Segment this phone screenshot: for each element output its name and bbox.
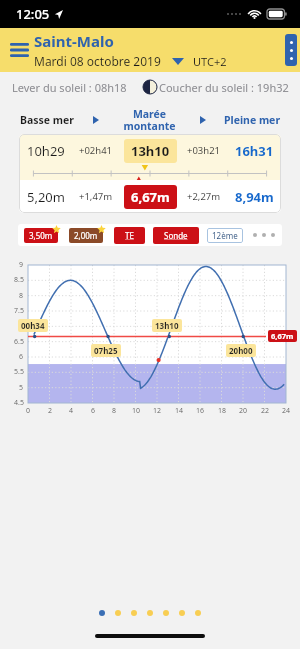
staticText: 0: [26, 406, 31, 416]
button[interactable]: [163, 610, 169, 616]
staticText: 8: [112, 406, 117, 416]
button[interactable]: 9: [0, 258, 300, 416]
button[interactable]: 3,50m: [24, 226, 61, 244]
staticText: 6: [91, 406, 96, 416]
staticText: +1,47m: [79, 190, 113, 203]
staticText: 5,20m: [27, 188, 65, 206]
staticText: 10h29: [27, 142, 65, 160]
staticText: 5: [19, 383, 24, 393]
button[interactable]: [179, 610, 185, 616]
staticText: 9: [19, 260, 24, 270]
staticText: 8: [19, 291, 24, 301]
staticText: +03h21: [187, 144, 221, 157]
staticText: 14: [175, 406, 184, 416]
staticText: 10: [132, 406, 141, 416]
button[interactable]: Choisir la date: [169, 54, 187, 68]
staticText: Coucher du soleil : 19h32: [159, 80, 289, 95]
staticText: 6: [19, 352, 24, 362]
staticText: 16h31: [235, 142, 274, 160]
button[interactable]: [115, 610, 121, 616]
button[interactable]: 12ème: [207, 228, 243, 243]
button[interactable]: Sonde: [153, 227, 199, 244]
staticText: 20h00: [229, 345, 253, 356]
button[interactable]: [195, 610, 201, 616]
staticText: 12: [153, 406, 162, 416]
staticText: 6.5: [14, 337, 24, 347]
staticText: 3,50m: [29, 230, 53, 241]
button[interactable]: [131, 610, 137, 616]
staticText: 2,00m: [74, 230, 98, 241]
button[interactable]: 2,00m: [69, 226, 106, 244]
staticText: Sonde: [164, 230, 188, 241]
staticText: Pleine mer: [224, 113, 281, 127]
staticText: 22: [261, 406, 270, 416]
button[interactable]: Plus d'indicateurs: [253, 233, 275, 237]
staticText: 6,67m: [131, 188, 170, 206]
button[interactable]: [99, 610, 105, 616]
button[interactable]: 10h29: [19, 134, 281, 213]
staticText: Lever du soleil : 08h18: [12, 80, 127, 95]
staticText: 16: [196, 406, 205, 416]
staticText: 4: [69, 406, 74, 416]
staticText: 12:05: [16, 5, 50, 23]
staticText: 7: [19, 321, 24, 331]
staticText: 2: [48, 406, 53, 416]
button[interactable]: Plus d'options: [285, 34, 297, 66]
staticText: 4.5: [14, 398, 24, 408]
button[interactable]: Mardi 08 octobre 2019: [34, 53, 161, 69]
staticText: 6,67m: [271, 331, 294, 341]
staticText: 20: [239, 406, 248, 416]
staticText: Marée montante: [123, 107, 176, 133]
staticText: 7.5: [14, 306, 24, 316]
staticText: UTC+2: [193, 54, 227, 69]
button[interactable]: [147, 610, 153, 616]
staticText: +2,27m: [187, 190, 221, 203]
other: Phase de lune: [143, 80, 157, 94]
staticText: 18: [218, 406, 227, 416]
button[interactable]: TE: [114, 227, 145, 244]
staticText: 8.5: [14, 275, 24, 285]
staticText: 5.5: [14, 367, 24, 377]
staticText: 07h25: [94, 345, 118, 356]
staticText: +02h41: [79, 144, 113, 157]
button[interactable]: Saint-Malo: [34, 31, 114, 51]
staticText: 24: [282, 406, 291, 416]
staticText: 8,94m: [235, 188, 274, 206]
button[interactable]: Menu: [4, 35, 34, 65]
staticText: TE: [125, 230, 134, 241]
staticText: Basse mer: [20, 113, 75, 127]
staticText: 13h10: [131, 142, 170, 160]
staticText: 12ème: [212, 230, 238, 241]
staticText: 13h10: [155, 320, 179, 331]
staticText: 00h34: [21, 320, 45, 331]
